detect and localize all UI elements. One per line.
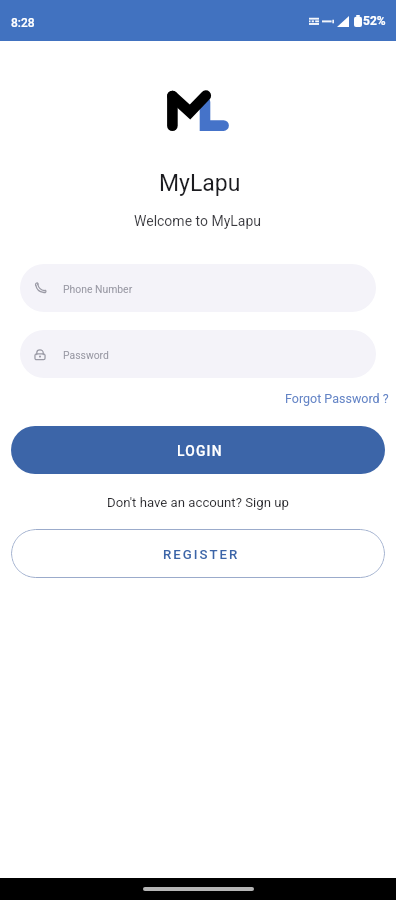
staticText: 52%	[363, 14, 386, 28]
button[interactable]: LOGIN	[11, 426, 385, 474]
staticText: MyLapu	[159, 170, 241, 197]
staticText: 8:28	[11, 16, 35, 30]
staticText: Welcome to MyLapu	[134, 213, 262, 229]
button[interactable]: Forgot Password ?	[285, 391, 389, 406]
staticText: Phone Number	[63, 283, 133, 295]
button[interactable]: Password	[20, 330, 376, 378]
button[interactable]: Phone Number	[20, 264, 376, 312]
staticText: Forgot Password ?	[285, 391, 389, 406]
button[interactable]: REGISTER	[11, 529, 385, 578]
staticText: Don't have an account? Sign up	[107, 495, 289, 510]
staticText: LOGIN	[177, 443, 223, 459]
button[interactable]: Don't have an account? Sign up	[107, 495, 289, 510]
staticText: REGISTER	[163, 547, 240, 562]
staticText: Password	[63, 349, 109, 361]
